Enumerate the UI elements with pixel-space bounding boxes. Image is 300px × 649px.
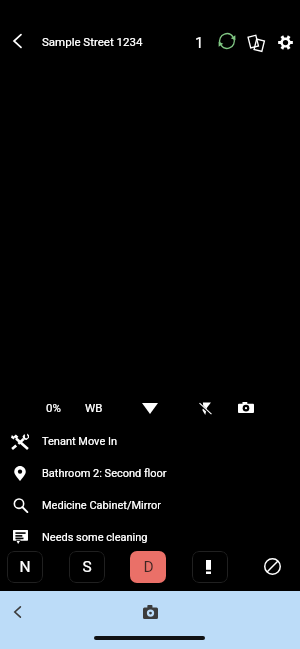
button[interactable]: Back [3, 598, 31, 626]
staticText: N [19, 558, 31, 576]
button[interactable]: Settings [270, 27, 300, 57]
button[interactable] [192, 551, 228, 583]
staticText: Tenant Move In [42, 435, 118, 448]
button[interactable]: Needs some cleaning [0, 521, 300, 553]
button[interactable]: Expand [137, 395, 163, 421]
staticText: Sample Street 1234 [42, 35, 143, 48]
button[interactable]: D [130, 551, 166, 583]
button[interactable]: Flash off [192, 395, 218, 421]
button[interactable]: Tenant Move In [0, 425, 300, 457]
button[interactable]: Sync [212, 26, 242, 56]
button[interactable]: Bathroom 2: Second floor [0, 457, 300, 489]
button[interactable]: S [69, 551, 105, 583]
button[interactable]: Not applicable [258, 552, 286, 580]
button[interactable]: Camera [136, 598, 164, 626]
button[interactable]: Gallery [241, 27, 271, 57]
staticText: Bathroom 2: Second floor [42, 467, 167, 480]
button[interactable]: Back [2, 26, 32, 56]
staticText: S [82, 558, 92, 576]
staticText: WB [85, 401, 103, 414]
button[interactable]: Switch camera [233, 394, 259, 420]
button[interactable]: N [7, 551, 43, 583]
staticText: Needs some cleaning [42, 531, 148, 544]
button[interactable]: Medicine Cabinet/Mirror [0, 489, 300, 521]
staticText: 0% [46, 401, 61, 414]
staticText: 1 [195, 34, 204, 52]
staticText: Medicine Cabinet/Mirror [42, 499, 162, 512]
staticText: D [143, 558, 154, 576]
